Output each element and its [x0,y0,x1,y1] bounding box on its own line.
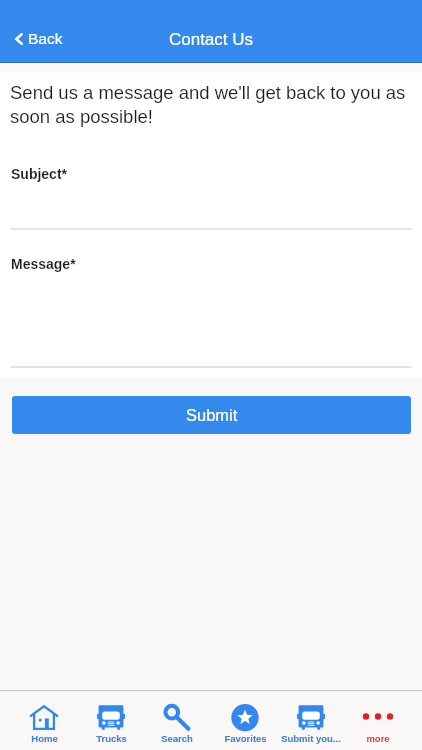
button[interactable]: More [345,700,411,744]
button[interactable]: Trucks [78,700,144,744]
button[interactable]: Submit [12,396,411,434]
button[interactable]: Submit your truck [278,700,344,744]
staticText: Trucks [96,733,127,744]
staticText: Search [161,733,193,744]
staticText: Favorites [224,733,267,744]
staticText: more [366,733,390,744]
button[interactable]: Favorites [212,700,278,744]
button[interactable]: Search [144,700,210,744]
staticText: Back [28,30,63,47]
staticText: Submit [186,406,238,424]
staticText: Message* [11,256,76,272]
staticText: Send us a message and we'll get back to … [10,82,410,127]
button[interactable]: Home [11,700,77,744]
staticText: Subject* [11,166,68,182]
button[interactable]: Back [11,26,67,51]
staticText: Submit you... [281,733,341,744]
staticText: Home [31,733,58,744]
staticText: Contact Us [0,30,422,49]
